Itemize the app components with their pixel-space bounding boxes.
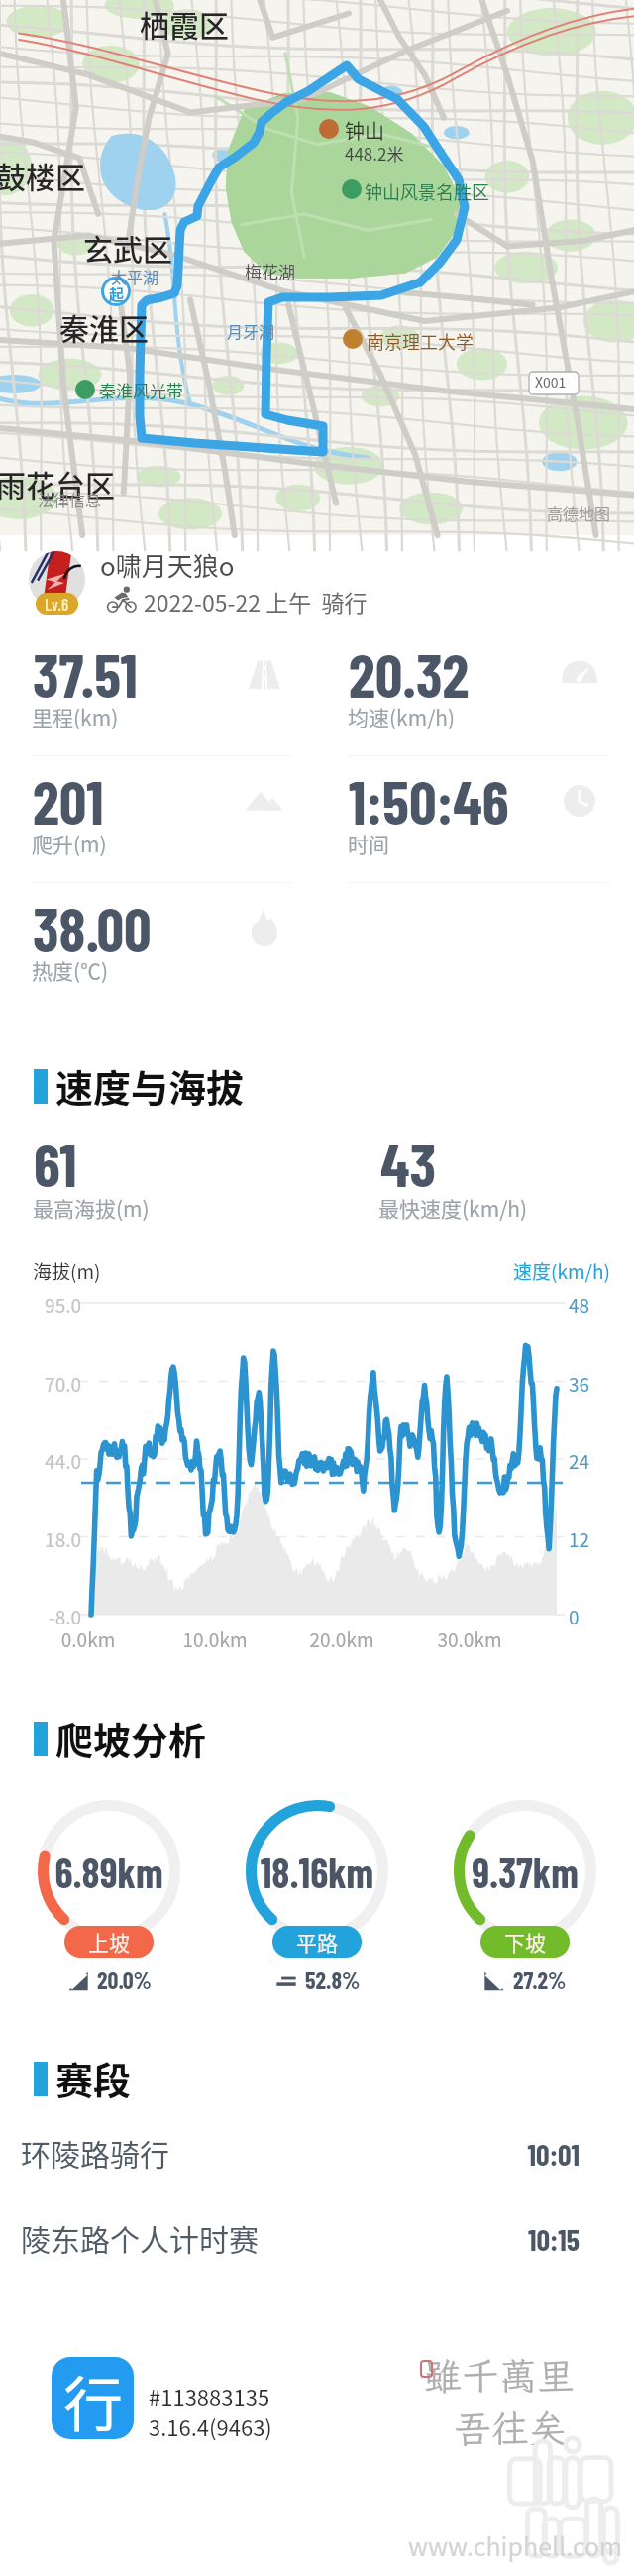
staticText: 9.37km — [441, 1848, 609, 1896]
staticText: 6.89km — [25, 1848, 193, 1896]
staticText: 里程(km) — [32, 702, 119, 731]
staticText: 鼓楼区 — [0, 154, 85, 196]
staticText: 52.8% — [305, 1965, 361, 1994]
staticText: -8.0 — [27, 1603, 81, 1630]
staticText: 下坡 — [504, 1927, 546, 1957]
button[interactable]: App logo — [52, 2357, 134, 2439]
staticText: 雖千萬里 — [424, 2351, 576, 2401]
button[interactable]: 20.32 — [317, 622, 634, 743]
staticText: 48 — [569, 1291, 590, 1319]
staticText: 36 — [569, 1370, 590, 1398]
staticText: 37.51 — [33, 637, 138, 710]
staticText: 吾往矣 — [454, 2404, 568, 2453]
staticText: 玄武区 — [83, 226, 172, 269]
staticText: 18.0 — [27, 1525, 81, 1553]
staticText: 赛段 — [55, 2051, 132, 2105]
staticText: 栖霞区 — [140, 2, 229, 45]
staticText: 钟山 — [345, 116, 384, 145]
staticText: 20.0km — [292, 1625, 391, 1653]
staticText: 10:15 — [436, 2221, 580, 2257]
staticText: 爬升(m) — [32, 829, 107, 858]
staticText: 18.16km — [233, 1848, 401, 1896]
staticText: 1:50:46 — [349, 764, 509, 837]
staticText: 70.0 — [27, 1370, 81, 1398]
button[interactable]: 37.51 — [0, 622, 317, 743]
staticText: 环陵路骑行 — [21, 2131, 169, 2174]
staticText: 速度与海拔 — [55, 1059, 245, 1113]
staticText: 10:01 — [436, 2136, 580, 2172]
button[interactable]: 环陵路骑行 — [0, 2108, 634, 2193]
button[interactable]: User avatar — [29, 551, 85, 608]
staticText: 海拔(m) — [33, 1257, 101, 1285]
staticText: 钟山风景名胜区 — [365, 178, 489, 204]
staticText: 43 — [380, 1127, 437, 1199]
staticText: 95.0 — [27, 1291, 81, 1319]
button[interactable]: 201 — [0, 749, 317, 870]
staticText: 最高海拔(m) — [33, 1193, 150, 1223]
staticText: 速度(km/h) — [513, 1257, 610, 1285]
button[interactable] — [454, 1800, 596, 1943]
staticText: 448.2米 — [345, 141, 404, 166]
button[interactable]: 下坡 — [480, 1926, 570, 1958]
staticText: 陵东路个人计时赛 — [21, 2216, 259, 2259]
staticText: 秦淮风光带 — [99, 378, 183, 402]
staticText: 起 — [109, 283, 125, 305]
staticText: 秦淮区 — [59, 305, 149, 348]
staticText: 38.00 — [33, 891, 152, 963]
button[interactable]: 平路 — [272, 1926, 362, 1958]
staticText: 3.16.4(9463) — [149, 2410, 272, 2442]
button[interactable]: 38.00 — [0, 876, 317, 997]
staticText: 平路 — [296, 1927, 338, 1957]
staticText: 20.32 — [349, 637, 470, 710]
staticText: X001 — [535, 372, 567, 392]
staticText: 30.0km — [420, 1625, 519, 1653]
staticText: 雨花台区 — [0, 462, 115, 504]
staticText: 61 — [34, 1127, 77, 1199]
staticText: 上坡 — [88, 1927, 130, 1957]
staticText: 0 — [569, 1603, 580, 1630]
staticText: Lv.6 — [45, 594, 69, 614]
staticText: 27.2% — [513, 1965, 567, 1994]
staticText: #113883135 — [149, 2380, 270, 2411]
staticText: 南京理工大学 — [367, 328, 474, 354]
staticText: 20.0% — [97, 1965, 152, 1994]
staticText: www.chiphell.com — [408, 2527, 623, 2563]
staticText: 爬坡分析 — [55, 1711, 207, 1765]
staticText: 10.0km — [165, 1625, 264, 1653]
staticText: 12 — [569, 1525, 590, 1553]
staticText: 行 — [63, 2357, 123, 2439]
staticText: 热度(℃) — [32, 955, 109, 985]
staticText: 法律信息 — [38, 488, 102, 510]
staticText: 太平湖 — [111, 265, 159, 287]
staticText: 0.0km — [39, 1625, 138, 1653]
button[interactable] — [246, 1800, 388, 1943]
staticText: 月牙湖 — [227, 319, 275, 342]
button[interactable]: Route map — [0, 0, 634, 535]
staticText: 梅花湖 — [245, 259, 295, 283]
staticText: o啸月天狼o — [100, 546, 235, 584]
button[interactable] — [38, 1800, 180, 1943]
staticText: 时间 — [348, 829, 389, 858]
staticText: 201 — [33, 764, 104, 837]
button[interactable]: 陵东路个人计时赛 — [0, 2193, 634, 2279]
staticText: 最快速度(km/h) — [378, 1193, 528, 1223]
staticText: 24 — [569, 1447, 590, 1475]
staticText: 均速(km/h) — [348, 702, 456, 731]
staticText: 高德地图 — [547, 502, 611, 524]
button[interactable]: 上坡 — [64, 1926, 154, 1958]
staticText: 44.0 — [27, 1447, 81, 1475]
staticText: 2022-05-22 上午 骑行 — [144, 585, 368, 617]
button[interactable]: 1:50:46 — [317, 749, 634, 870]
